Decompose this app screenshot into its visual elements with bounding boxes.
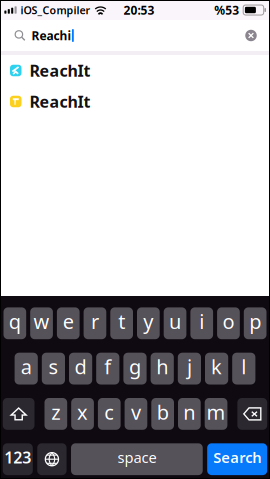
button[interactable]: n	[178, 398, 201, 430]
staticText: j	[187, 353, 192, 380]
staticText: w	[34, 308, 50, 335]
staticText: t	[118, 308, 125, 335]
button[interactable]: k	[205, 353, 228, 384]
button[interactable]: o	[217, 307, 240, 339]
button[interactable]: f	[96, 353, 119, 384]
button[interactable]: c	[98, 398, 121, 430]
button[interactable]: s	[42, 353, 65, 384]
staticText: z	[51, 399, 60, 425]
staticText: %53	[214, 2, 239, 18]
button[interactable]: w	[30, 307, 53, 339]
button[interactable]: 123	[3, 443, 33, 475]
button[interactable]: i	[190, 307, 213, 339]
button[interactable]: j	[178, 353, 201, 384]
staticText: i	[199, 308, 204, 335]
button[interactable]: Shift	[3, 398, 34, 430]
staticText: Search	[213, 447, 261, 467]
staticText: h	[156, 353, 168, 380]
staticText: q	[9, 308, 21, 335]
staticText: b	[157, 399, 169, 425]
button[interactable]: x	[71, 398, 94, 430]
button[interactable]: p	[244, 307, 266, 339]
staticText: g	[129, 353, 141, 380]
button[interactable]: q	[3, 307, 26, 339]
button[interactable]: z	[44, 398, 67, 430]
staticText: v	[131, 399, 141, 425]
button[interactable]: u	[164, 307, 186, 339]
button[interactable]: v	[125, 398, 147, 430]
staticText: n	[183, 399, 195, 425]
staticText: m	[206, 399, 225, 425]
staticText: a	[21, 353, 32, 380]
staticText: r	[91, 308, 99, 335]
staticText: p	[249, 308, 261, 335]
staticText: ReachIt	[29, 91, 90, 112]
button[interactable]: y	[137, 307, 160, 339]
staticText: s	[48, 353, 58, 380]
button[interactable]: m	[205, 398, 227, 430]
button[interactable]: Delete	[237, 398, 267, 430]
staticText: ReachIt	[29, 60, 90, 81]
staticText: x	[77, 399, 88, 425]
staticText: k	[211, 353, 222, 380]
staticText: o	[222, 308, 234, 335]
button[interactable]: t	[110, 307, 133, 339]
staticText: space	[117, 447, 156, 467]
staticText: c	[104, 399, 114, 425]
button[interactable]: d	[69, 353, 92, 384]
staticText: l	[241, 353, 246, 380]
staticText: f	[104, 353, 111, 380]
button[interactable]: Search	[207, 443, 267, 475]
button[interactable]: h	[151, 353, 174, 384]
staticText: 20:53	[123, 2, 154, 18]
staticText: iOS_Compiler	[20, 3, 90, 17]
button[interactable]: ReachIt	[0, 55, 270, 86]
button[interactable]: space	[71, 443, 203, 475]
button[interactable]: a	[15, 353, 38, 384]
button[interactable]: Next keyboard	[37, 443, 67, 475]
button[interactable]: r	[84, 307, 106, 339]
button[interactable]: g	[123, 353, 147, 384]
button[interactable]: e	[57, 307, 80, 339]
button[interactable]: b	[151, 398, 174, 430]
staticText: d	[75, 353, 87, 380]
button[interactable]: Clear text	[239, 23, 263, 47]
staticText: u	[169, 308, 181, 335]
staticText: Reachi	[31, 27, 71, 43]
staticText: 123	[4, 447, 31, 468]
button[interactable]: ReachIt	[0, 86, 270, 117]
button[interactable]: l	[232, 353, 255, 384]
staticText: y	[143, 308, 153, 335]
staticText: e	[63, 308, 74, 335]
